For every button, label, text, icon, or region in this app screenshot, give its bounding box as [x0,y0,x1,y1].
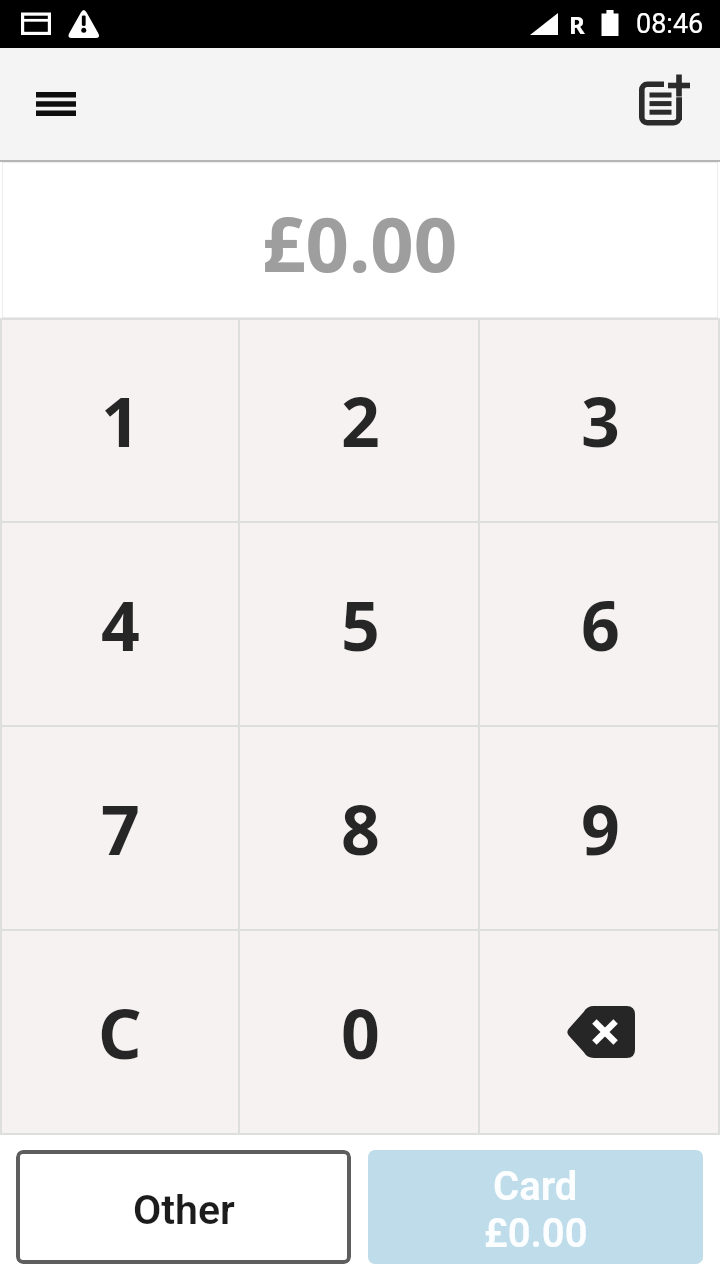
staticText: Other [133,1186,235,1234]
staticText: Card [493,1163,578,1210]
staticText: 8 [341,782,380,875]
staticText: 5 [341,578,380,671]
button[interactable]: 2 [240,320,480,521]
staticText: 9 [581,782,620,875]
button[interactable]: 6 [480,523,720,725]
button[interactable]: Card [368,1150,703,1264]
button[interactable]: 0 [240,931,480,1133]
button[interactable]: 7 [0,727,240,929]
button[interactable]: C [0,931,240,1133]
staticText: 0 [341,986,380,1079]
staticText: 1 [101,374,140,467]
staticText: 08:46 [636,8,704,40]
button[interactable]: 4 [0,523,240,725]
staticText: £0.00 [484,1210,588,1257]
button[interactable]: 3 [480,320,720,521]
button[interactable]: Other [16,1150,351,1264]
staticText: 4 [101,578,140,671]
button[interactable]: 1 [0,320,240,521]
staticText: R [569,8,585,41]
button[interactable]: 5 [240,523,480,725]
button[interactable]: Add note [631,68,699,136]
button[interactable]: 8 [240,727,480,929]
button[interactable]: Backspace [480,931,720,1133]
staticText: 3 [581,374,620,467]
staticText: 2 [341,374,380,467]
staticText: 6 [581,578,620,671]
button[interactable]: Open navigation menu [23,71,89,137]
button[interactable]: 9 [480,727,720,929]
staticText: £0.00 [262,191,458,295]
staticText: C [98,986,142,1079]
staticText: 7 [101,782,140,875]
